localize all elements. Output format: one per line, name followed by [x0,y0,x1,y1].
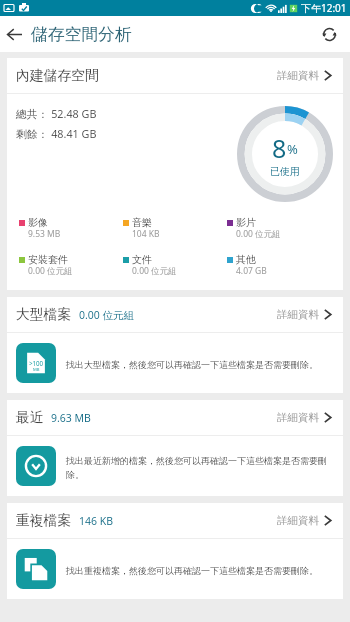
staticText: 重複檔案 [16,512,72,529]
staticText: 0.00 位元組 [132,265,177,277]
staticText: 詳細資料 [277,308,319,321]
staticText: 9.63 MB [51,411,91,425]
button[interactable]: 詳細資料 [269,514,338,527]
staticText: 大型檔案 [16,306,72,323]
staticText: 詳細資料 [277,69,319,82]
button[interactable]: 找出最近新增的檔案，然後您可以再確認一下這些檔案是否需要刪除。 [7,436,343,495]
staticText: 文件 [132,253,152,266]
staticText: 儲存空間分析 [31,24,132,45]
staticText: 0.00 位元組 [28,265,73,277]
button[interactable]: 詳細資料 [269,69,338,82]
staticText: 0.00 位元組 [236,228,281,240]
staticText: % [287,140,298,158]
staticText: 詳細資料 [277,411,319,424]
button[interactable]: 詳細資料 [269,411,338,424]
staticText: 影片 [236,216,256,229]
staticText: 總共： 52.48 GB [16,106,97,121]
button[interactable]: >100 [7,333,343,392]
staticText: >100 [29,359,44,367]
staticText: 已使用 [270,165,300,178]
staticText: 音樂 [132,216,152,229]
staticText: 4.07 GB [236,265,267,277]
staticText: 安裝套件 [28,253,68,266]
staticText: 下午12:01 [301,1,347,15]
button[interactable]: 詳細資料 [269,308,338,321]
staticText: 8 [272,131,287,165]
staticText: 找出最近新增的檔案，然後您可以再確認一下這些檔案是否需要刪除。 [66,455,331,481]
staticText: 9.53 MB [28,228,61,240]
button[interactable]: Refresh [311,16,347,52]
button[interactable]: 找出重複檔案，然後您可以再確認一下這些檔案是否需要刪除。 [7,539,343,598]
staticText: 146 KB [79,514,114,528]
button[interactable]: Back [0,16,29,52]
staticText: 找出重複檔案，然後您可以再確認一下這些檔案是否需要刪除。 [66,565,318,576]
staticText: 內建儲存空間 [16,67,99,84]
staticText: 找出大型檔案，然後您可以再確認一下這些檔案是否需要刪除。 [66,359,318,370]
staticText: 其他 [236,253,256,266]
staticText: 剩餘： 48.41 GB [16,126,97,141]
staticText: MB [33,367,40,373]
staticText: 詳細資料 [277,514,319,527]
staticText: 104 KB [132,228,160,240]
staticText: 影像 [28,216,48,229]
staticText: 0.00 位元組 [79,308,135,322]
staticText: 最近 [16,409,44,426]
